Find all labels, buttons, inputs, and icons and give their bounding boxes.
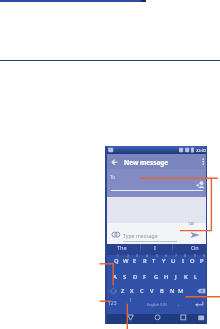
staticText: Type message [123,232,158,239]
button[interactable]: Y [148,254,180,268]
button[interactable]: I [167,254,199,268]
button[interactable] [109,157,119,167]
button[interactable]: On [179,240,211,254]
staticText: 1 [117,254,119,258]
button[interactable]: E [119,254,151,268]
button[interactable]: M [165,284,197,298]
staticText: C [140,287,144,295]
staticText: 4 [146,254,148,258]
button[interactable]: F [129,270,161,284]
staticText: B [160,287,164,295]
staticText: 5 [156,254,158,258]
button[interactable]: R [129,254,161,268]
button[interactable]: Z [107,284,139,298]
button[interactable]: English (US) [141,297,173,311]
staticText: J [175,273,177,281]
staticText: Y [162,257,166,265]
staticText: . [178,300,180,307]
staticText: R [143,257,147,265]
button[interactable] [196,313,205,322]
button[interactable] [126,313,135,322]
button[interactable]: U [157,254,189,268]
staticText: S [123,273,127,281]
staticText: The [117,244,127,251]
staticText: 123 [108,300,117,307]
button[interactable]: S [109,270,141,284]
button[interactable]: A [99,270,131,284]
button[interactable]: H [150,270,182,284]
staticText: 9 [194,254,196,258]
button[interactable]: G [140,270,172,284]
button[interactable]: N [156,284,188,298]
button[interactable] [153,313,162,322]
staticText: ! [130,297,132,304]
button[interactable]: W [110,254,142,268]
button[interactable] [194,300,205,309]
staticText: U [171,257,176,265]
staticText: 22:02 [196,148,207,153]
button[interactable]: 123 [96,296,128,310]
staticText: E [133,257,137,265]
button[interactable] [179,313,188,322]
staticText: L [194,273,198,281]
staticText: N [170,287,175,295]
staticText: M [178,287,184,295]
staticText: 0 [203,254,205,258]
button[interactable]: V [136,284,168,298]
button[interactable]: The [106,240,138,254]
button[interactable]: ! [115,293,147,307]
button[interactable] [196,181,206,190]
staticText: P [200,257,204,265]
staticText: H [164,273,169,281]
button[interactable] [196,286,207,295]
staticText: Q [114,257,119,265]
staticText: F [143,273,147,281]
staticText: V [150,287,154,295]
staticText: O [190,257,195,265]
button[interactable]: C [126,284,158,298]
staticText: 7 [175,254,177,258]
staticText: Z [121,287,125,295]
staticText: W [123,257,129,265]
staticText: 3 [136,254,138,258]
button[interactable] [199,157,207,167]
staticText: To [110,174,116,180]
staticText: A [113,273,117,281]
button[interactable] [111,231,120,239]
staticText: D [133,273,138,281]
staticText: 8 [184,254,186,258]
button[interactable]: I [139,240,171,254]
button[interactable] [108,286,119,295]
staticText: 140 [188,221,195,226]
staticText: 6 [165,254,167,258]
button[interactable]: B [146,284,178,298]
button[interactable] [188,230,201,240]
staticText: I [182,257,185,265]
staticText: K [184,273,188,281]
staticText: New message [124,158,169,167]
staticText: X [130,287,134,295]
button[interactable]: J [160,270,192,284]
staticText: G [154,273,159,281]
staticText: 2 [127,254,129,258]
button[interactable]: Q [100,254,132,268]
staticText: I [154,244,156,251]
button[interactable]: P [186,254,218,268]
button[interactable]: . [163,296,195,310]
button[interactable]: K [170,270,202,284]
staticText: T [152,257,156,265]
button[interactable]: L [180,270,212,284]
button[interactable]: X [116,284,148,298]
button[interactable]: T [138,254,170,268]
button[interactable]: O [176,254,208,268]
button[interactable]: D [119,270,151,284]
staticText: English (US) [147,302,167,307]
staticText: On [191,244,199,251]
